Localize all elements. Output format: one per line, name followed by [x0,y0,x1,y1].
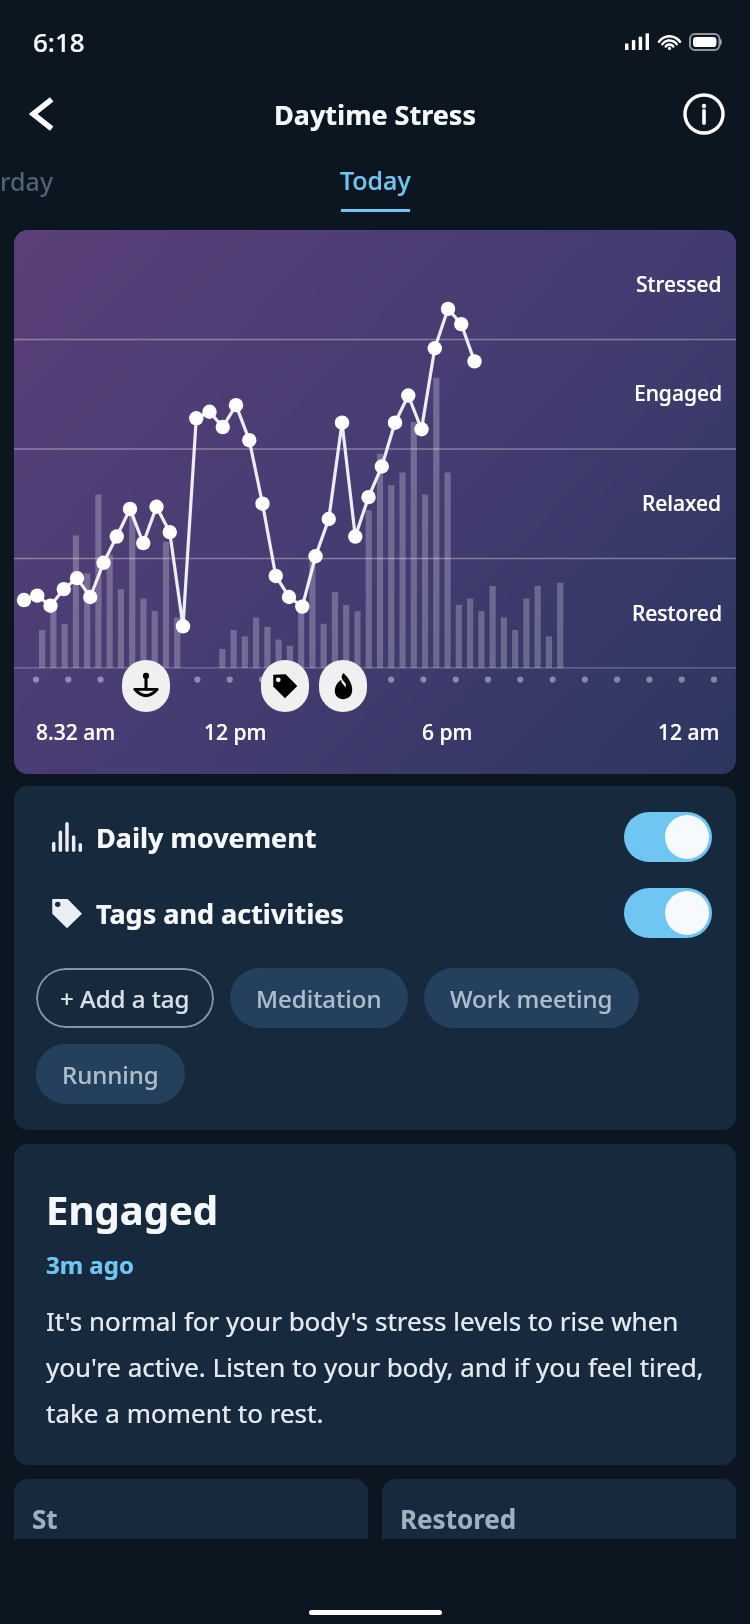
button[interactable]: Running [36,1044,185,1104]
staticText: Restored [632,599,722,628]
button[interactable]: Daily movement [14,812,736,862]
staticText: St [32,1501,58,1536]
staticText: Today [340,163,411,197]
button[interactable]: Restored [382,1479,736,1539]
staticText: Running [62,1058,159,1091]
button[interactable]: Activity [319,660,367,712]
staticText: Relaxed [642,489,722,518]
button[interactable]: Today [340,163,411,212]
staticText: + Add a tag [60,982,190,1015]
staticText: Stressed [636,270,722,299]
button[interactable]: Stressed [14,230,736,774]
staticText: Meditation [256,982,382,1015]
staticText: 12 pm [204,718,267,747]
staticText: Work meeting [450,982,613,1015]
button[interactable]: Back [14,85,72,143]
button[interactable]: St [14,1479,368,1539]
staticText: 6:18 [33,24,85,59]
button[interactable]: Info [676,86,732,142]
staticText: Restored [400,1501,517,1536]
staticText: Tags and activities [96,895,624,932]
button[interactable]: Meditation [230,968,408,1028]
staticText: Engaged [634,379,722,408]
button[interactable]: Tags and activities [14,888,736,938]
staticText: It's normal for your body's stress level… [46,1303,710,1431]
staticText: Engaged [46,1182,219,1236]
button[interactable]: + Add a tag [36,968,214,1028]
staticText: Daily movement [96,819,624,856]
button[interactable]: rday [0,164,54,198]
staticText: Daytime Stress [274,96,476,133]
staticText: 3m ago [46,1248,134,1281]
staticText: 8.32 am [36,718,116,747]
staticText: 12 am [658,718,720,747]
staticText: 6 pm [422,718,473,747]
button[interactable]: Tag [261,660,309,712]
other: Tags and activities toggle [624,888,712,938]
other: Daily movement toggle [624,812,712,862]
button[interactable]: Engaged [14,1144,736,1465]
button[interactable]: Work meeting [424,968,639,1028]
button[interactable]: Meditation [122,660,170,712]
